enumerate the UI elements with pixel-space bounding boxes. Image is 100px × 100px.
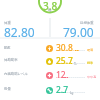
other: 体脂肪率 <box>46 58 53 65</box>
button[interactable]: 体脂肪率 <box>0 52 100 65</box>
staticText: kg <box>48 8 52 12</box>
other: BMI <box>46 45 53 52</box>
other: 内臓脂肪レベル <box>46 72 53 79</box>
staticText: やや高 <box>87 75 97 79</box>
button[interactable]: 内臓脂肪レベル <box>0 66 100 79</box>
staticText: 79.00 <box>63 24 94 40</box>
other: 骨量 <box>46 87 53 94</box>
staticText: 25.7 <box>56 55 73 67</box>
staticText: kg <box>70 91 74 95</box>
staticText: 3.8 <box>43 0 58 13</box>
staticText: 目標体重 <box>80 21 94 25</box>
staticText: 標準 <box>87 61 93 65</box>
staticText: % <box>74 62 77 66</box>
button[interactable]: 骨量 <box>0 81 100 94</box>
staticText: 骨量 <box>4 87 11 91</box>
staticText: BMI <box>4 45 11 50</box>
staticText: 30.8 <box>56 42 73 54</box>
button[interactable]: BMI <box>0 39 100 52</box>
staticText: 体重 <box>4 21 11 25</box>
staticText: 82.80 <box>4 24 35 40</box>
staticText: 12 <box>56 69 66 81</box>
staticText: 2.7 <box>56 84 69 96</box>
staticText: 体脂肪率 <box>4 58 18 62</box>
staticText: 肥満 <box>87 48 93 52</box>
staticText: 内臓脂肪レベル <box>4 72 28 76</box>
